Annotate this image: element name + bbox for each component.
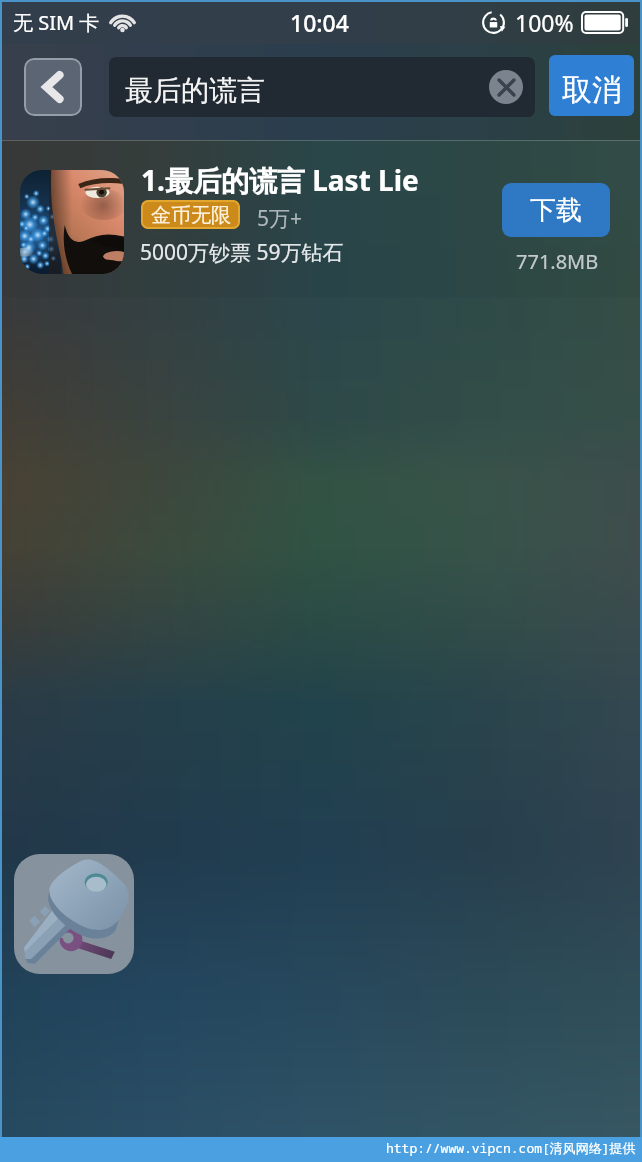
staticText: 下载: [530, 194, 582, 227]
button[interactable]: Last Lie app icon: [0, 140, 642, 297]
staticText: 无 SIM 卡: [13, 9, 100, 36]
staticText: 10:04: [290, 7, 349, 38]
button[interactable]: Back: [24, 58, 82, 116]
staticText: 100%: [515, 7, 574, 38]
staticText: 771.8MB: [516, 248, 599, 275]
staticText: 最后的谎言: [125, 73, 265, 108]
staticText: 取消: [562, 71, 622, 109]
staticText: 1.最后的谎言 Last Lie: [141, 161, 419, 199]
button[interactable]: 下载: [502, 183, 610, 237]
button[interactable]: Last Lie app icon: [20, 170, 124, 274]
button[interactable]: Key tool app: [14, 854, 134, 974]
button[interactable]: Clear search: [489, 70, 523, 104]
staticText: 金币无限: [151, 203, 231, 228]
button[interactable]: 取消: [549, 55, 634, 116]
button[interactable]: 最后的谎言: [109, 57, 535, 117]
staticText: 5万+: [257, 204, 303, 233]
staticText: http://www.vipcn.com[清风网络]提供: [386, 1139, 636, 1157]
staticText: 5000万钞票 59万钻石: [140, 238, 344, 267]
